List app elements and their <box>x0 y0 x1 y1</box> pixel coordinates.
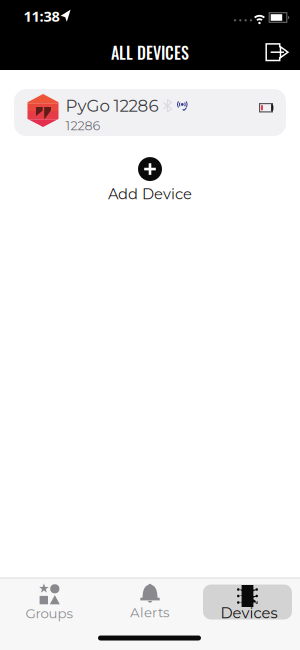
button[interactable]: Alerts <box>105 580 195 624</box>
button[interactable]: Log Out <box>259 36 295 70</box>
staticText: Alerts <box>130 604 170 621</box>
staticText: 12286 <box>65 118 100 133</box>
button[interactable]: Devices <box>203 580 292 624</box>
staticText: ALL DEVICES <box>111 41 189 64</box>
staticText: Groups <box>25 605 73 622</box>
staticText: Add Device <box>108 185 192 203</box>
button[interactable]: Groups <box>5 580 95 624</box>
staticText: 11:38 <box>23 6 59 26</box>
button[interactable]: Add Device <box>108 157 192 203</box>
button[interactable]: PyGo 12286 <box>14 89 286 136</box>
staticText: PyGo 12286 <box>65 96 158 116</box>
staticText: Devices <box>220 604 277 622</box>
